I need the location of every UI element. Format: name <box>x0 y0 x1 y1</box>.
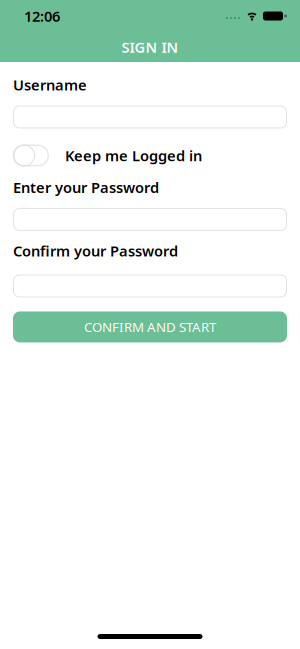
staticText: Enter your Password <box>13 177 159 197</box>
staticText: SIGN IN <box>121 37 178 57</box>
staticText: CONFIRM AND START <box>84 318 216 336</box>
button[interactable]: Keep me Logged in <box>13 144 287 166</box>
staticText: Confirm your Password <box>13 241 178 260</box>
staticText: Username <box>13 75 87 94</box>
staticText: 12:06 <box>24 6 60 26</box>
staticText: Keep me Logged in <box>65 146 202 165</box>
button[interactable]: CONFIRM AND START <box>13 311 287 342</box>
